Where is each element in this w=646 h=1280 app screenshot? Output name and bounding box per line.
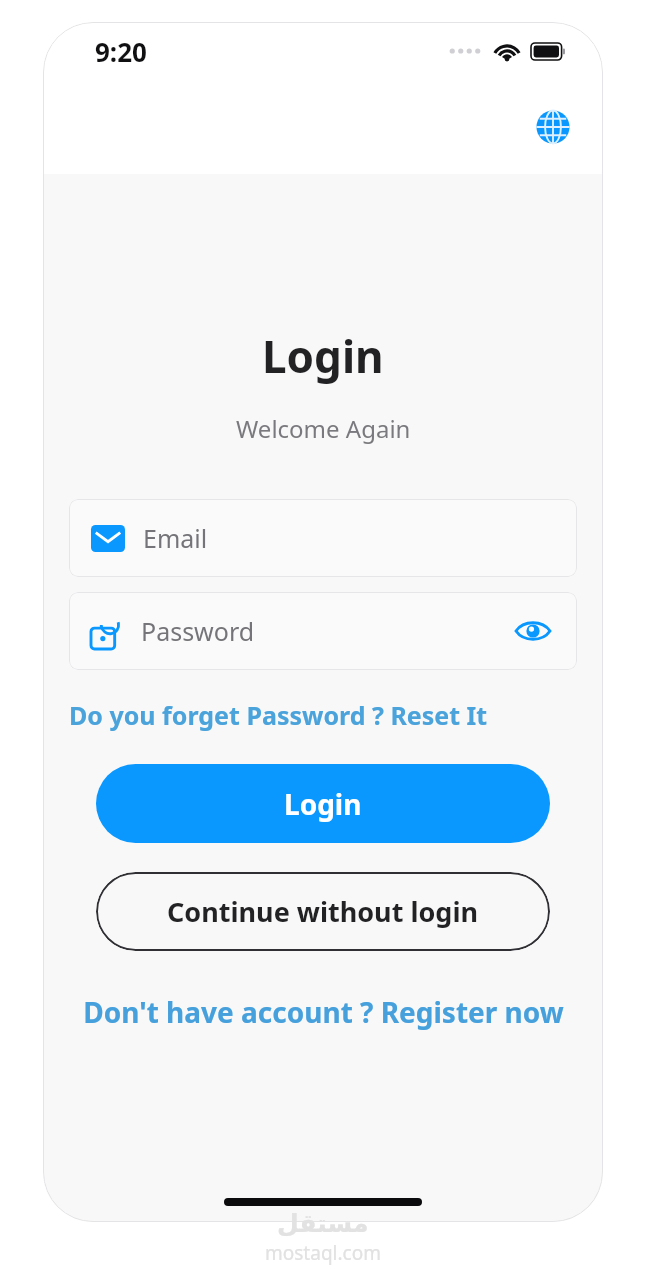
staticText: مستقل [277, 1209, 369, 1238]
staticText: 9:20 [95, 34, 147, 69]
button[interactable]: Don't have account ? Register now [73, 987, 574, 1037]
button[interactable]: Continue without login [96, 872, 550, 951]
staticText: Welcome Again [236, 412, 411, 445]
button[interactable]: Login [96, 764, 550, 843]
button[interactable]: Show password [511, 609, 555, 653]
staticText: Password [141, 614, 255, 648]
staticText: Continue without login [167, 893, 479, 930]
staticText: mostaql.com [265, 1240, 381, 1266]
staticText: Email [143, 521, 208, 555]
staticText: Login [284, 785, 362, 823]
button[interactable]: Change language [527, 101, 579, 153]
button[interactable]: Email [69, 499, 577, 577]
button[interactable]: Do you forget Password ? Reset It [69, 692, 488, 738]
staticText: Login [262, 326, 384, 386]
button[interactable]: Password [69, 592, 577, 670]
